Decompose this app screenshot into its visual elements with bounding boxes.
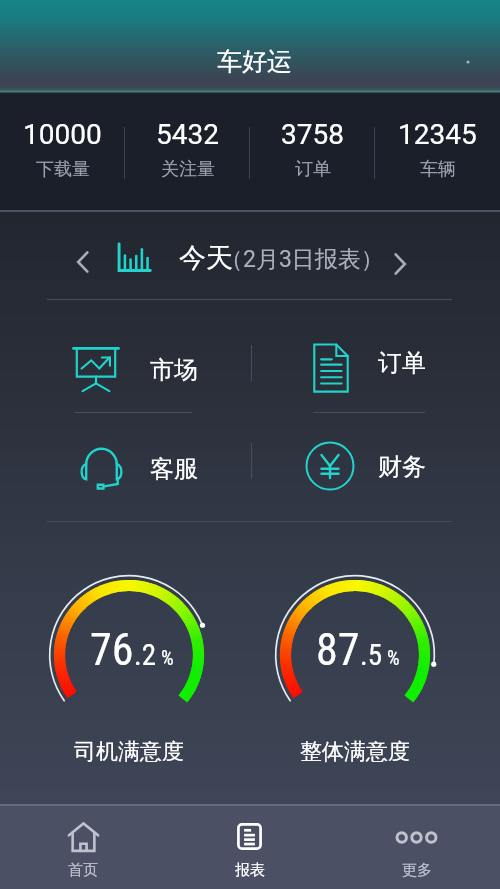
- staticText: %: [387, 646, 400, 669]
- staticText: 市场: [150, 355, 198, 385]
- button[interactable]: 更多: [333, 806, 500, 889]
- staticText: 车辆: [420, 158, 456, 181]
- staticText: 3758: [281, 118, 344, 151]
- staticText: 司机满意度: [74, 738, 184, 766]
- button[interactable]: Next day: [379, 243, 421, 285]
- button[interactable]: [296, 329, 432, 395]
- staticText: %: [161, 646, 174, 669]
- staticText: 订单: [295, 158, 331, 181]
- staticText: （2月3日报表）: [220, 245, 384, 274]
- staticText: 车好运: [217, 46, 292, 77]
- button[interactable]: [56, 331, 204, 407]
- staticText: 今天: [179, 241, 233, 275]
- staticText: 关注量: [161, 158, 215, 181]
- button[interactable]: [289, 427, 432, 505]
- staticText: 10000: [23, 118, 102, 151]
- staticText: 76: [90, 624, 134, 672]
- staticText: 财务: [378, 452, 426, 482]
- staticText: .2: [134, 638, 156, 672]
- staticText: 87: [316, 624, 360, 672]
- button[interactable]: 报表: [166, 806, 333, 889]
- staticText: 12345: [398, 118, 477, 151]
- staticText: .5: [360, 638, 382, 672]
- staticText: 首页: [68, 861, 98, 880]
- button[interactable]: [62, 431, 204, 506]
- staticText: 客服: [150, 454, 198, 484]
- staticText: 整体满意度: [300, 738, 410, 766]
- staticText: 更多: [402, 861, 432, 880]
- staticText: 下载量: [36, 158, 90, 181]
- staticText: 报表: [235, 861, 265, 880]
- staticText: 订单: [378, 348, 426, 378]
- button[interactable]: 首页: [0, 806, 166, 889]
- button[interactable]: 今天: [114, 236, 397, 280]
- staticText: 5432: [156, 118, 219, 151]
- button[interactable]: Previous day: [62, 241, 104, 283]
